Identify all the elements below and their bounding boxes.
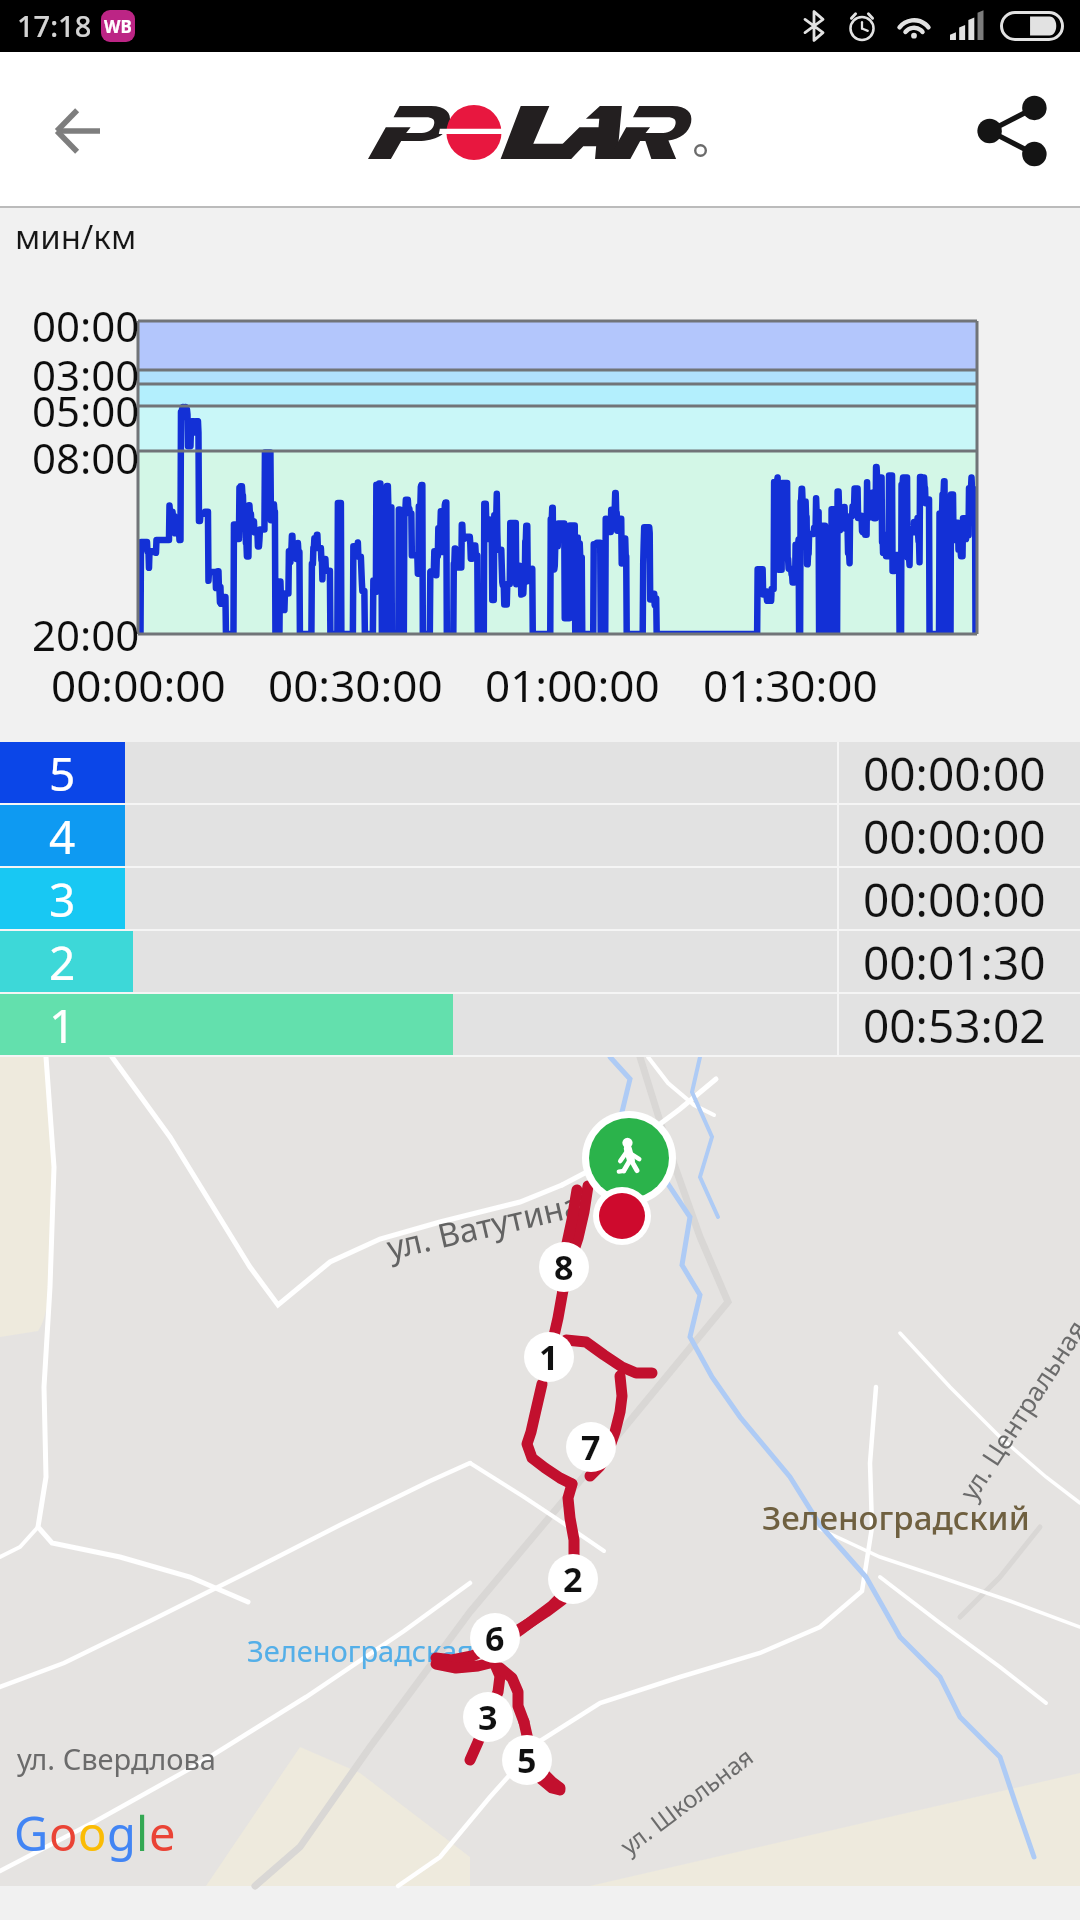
staticText: 08:00 (32, 429, 140, 486)
staticText: 5 (517, 1737, 537, 1783)
button[interactable]: Route map (0, 1057, 1080, 1886)
staticText: 00:00:00 (863, 868, 1046, 931)
staticText: мин/км (15, 214, 137, 259)
staticText: 00:00 (32, 297, 140, 354)
staticText: 01:00:00 (485, 655, 660, 715)
staticText: Зеленоградская (247, 1631, 474, 1670)
staticText: 2 (563, 1556, 583, 1602)
button[interactable]: Kilometre marker 8 (539, 1242, 589, 1292)
staticText: 05:00 (32, 382, 140, 439)
staticText: 00:01:30 (863, 931, 1046, 994)
staticText: 00:00:00 (863, 805, 1046, 868)
button[interactable]: 2 (0, 931, 1080, 994)
button[interactable]: 4 (0, 805, 1080, 868)
button[interactable]: Kilometre marker 3 (463, 1692, 513, 1742)
staticText: 4 (49, 805, 76, 868)
staticText: G (14, 1801, 49, 1865)
button[interactable]: 1 (0, 994, 1080, 1057)
staticText: 01:30:00 (703, 655, 878, 715)
staticText: 1 (49, 994, 76, 1057)
staticText: Зеленоградский (762, 1495, 1030, 1540)
staticText: 8 (554, 1244, 574, 1290)
staticText: o (78, 1801, 107, 1865)
staticText: ул. Школьная (613, 1739, 760, 1861)
staticText: 00:00:00 (863, 742, 1046, 805)
button[interactable]: Kilometre marker 7 (566, 1422, 616, 1472)
button[interactable]: 3 (0, 868, 1080, 931)
staticText: ул. Свердлова (17, 1739, 216, 1778)
staticText: 17:18 (17, 6, 92, 45)
staticText: 03:00 (32, 346, 140, 403)
staticText: l (136, 1801, 149, 1865)
staticText: 00:53:02 (863, 994, 1046, 1057)
staticText: e (149, 1801, 176, 1865)
staticText: ул. Центральная (951, 1313, 1080, 1506)
staticText: ул. Ватутина (382, 1181, 585, 1270)
staticText: 3 (478, 1694, 498, 1740)
staticText: 00:00:00 (51, 655, 226, 715)
staticText: 00:30:00 (268, 655, 443, 715)
staticText: 7 (581, 1424, 601, 1470)
button[interactable]: Kilometre marker 5 (502, 1735, 552, 1785)
button[interactable]: Kilometre marker 1 (524, 1332, 574, 1382)
staticText: WB (104, 15, 132, 38)
staticText: 3 (49, 868, 76, 931)
staticText: 2 (49, 931, 76, 994)
staticText: o (49, 1801, 78, 1865)
staticText: 20:00 (32, 606, 140, 663)
button[interactable]: Kilometre marker 6 (470, 1613, 520, 1663)
button[interactable]: 5 (0, 742, 1080, 805)
staticText: 5 (49, 742, 76, 805)
button[interactable]: Back (34, 87, 122, 175)
staticText: 1 (539, 1334, 559, 1380)
button[interactable]: Kilometre marker 2 (548, 1554, 598, 1604)
staticText: 6 (485, 1615, 505, 1661)
button[interactable]: Share (964, 83, 1060, 179)
staticText: g (107, 1801, 136, 1865)
